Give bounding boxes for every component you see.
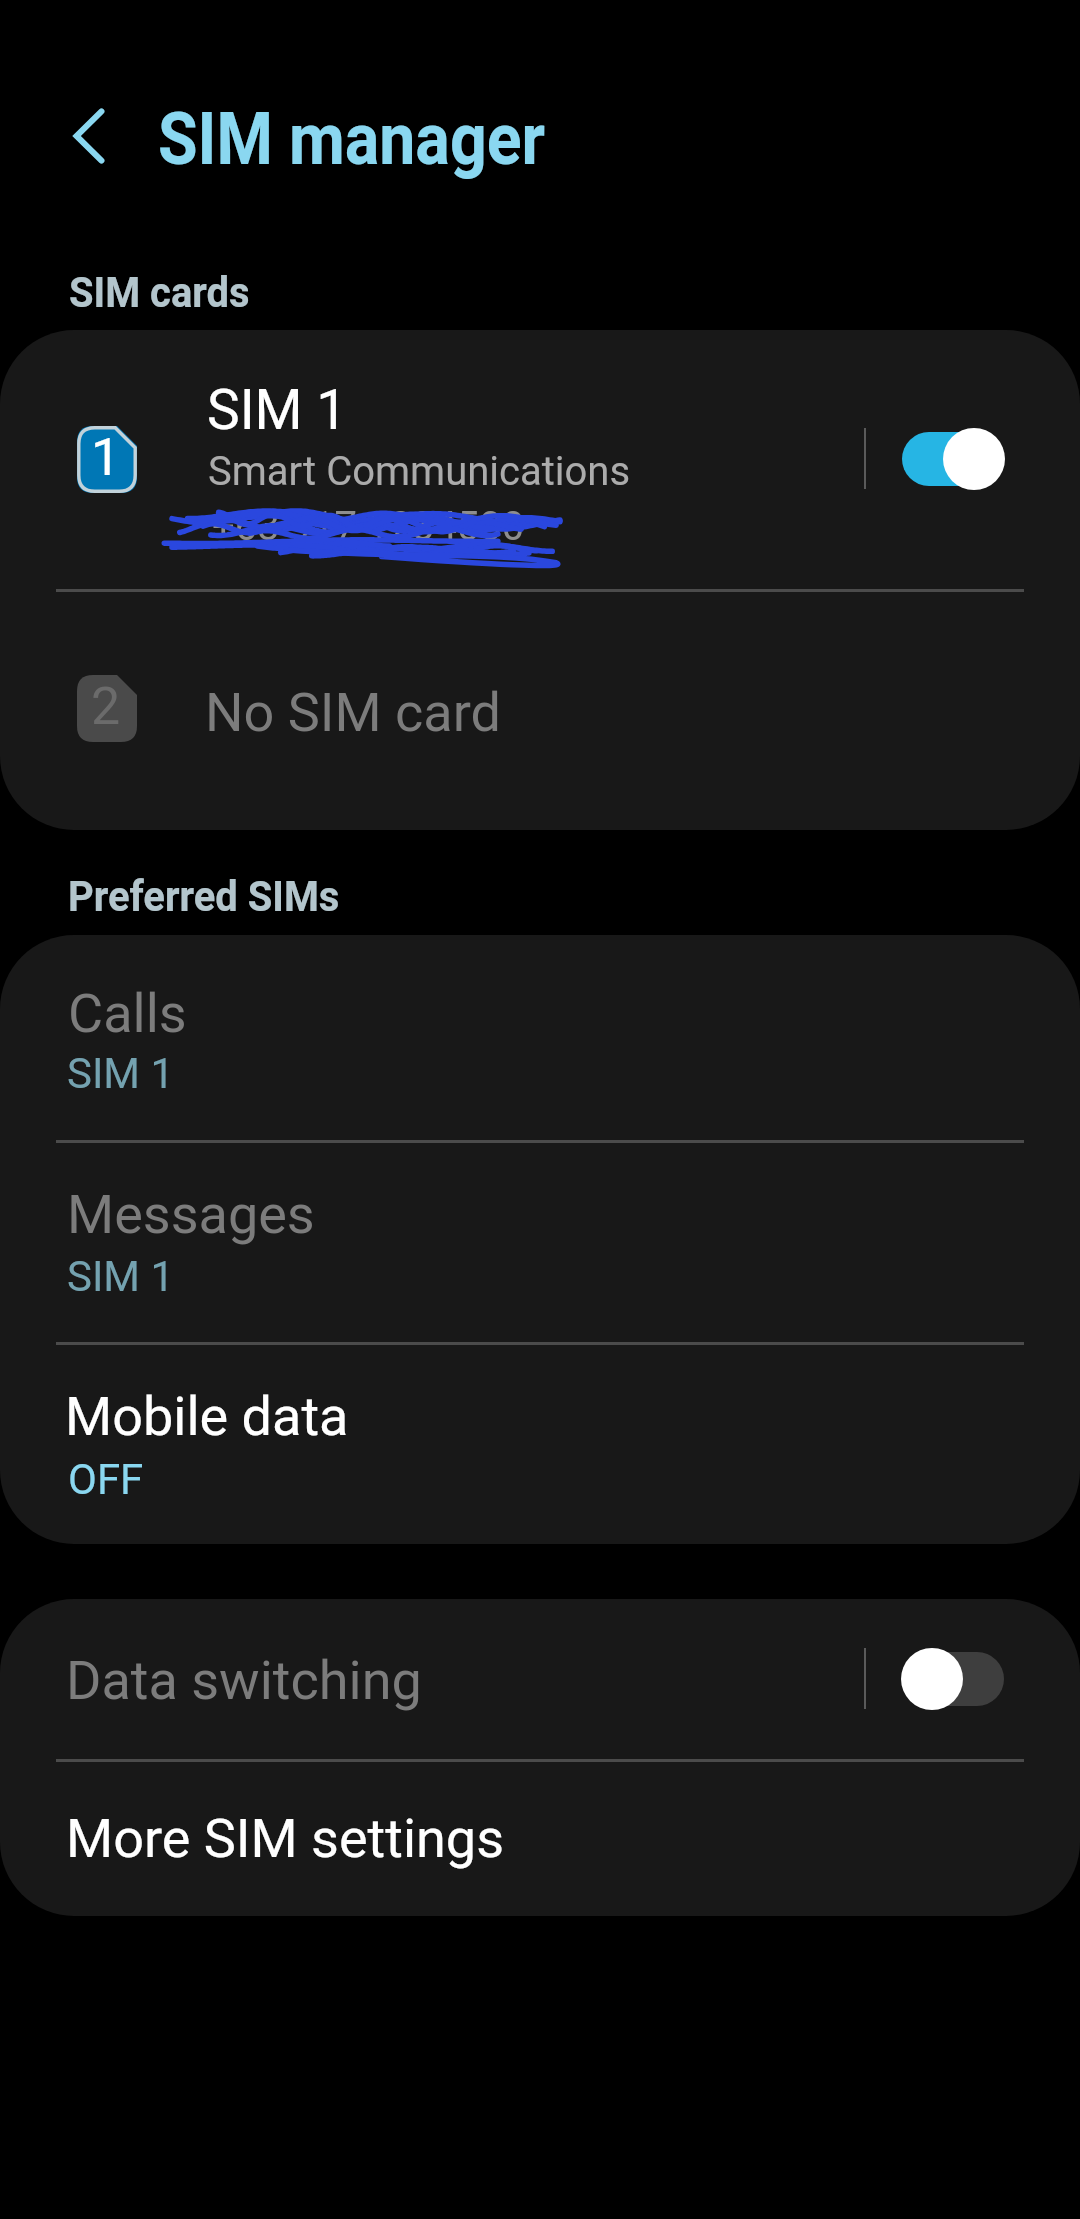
staticText: SIM cards (69, 268, 250, 317)
button[interactable]: Turn off (890, 418, 1016, 500)
button[interactable]: Data switching (0, 1599, 1080, 1759)
staticText: +63 917 1234500 (212, 503, 525, 550)
staticText: SIM manager (158, 97, 545, 181)
button[interactable]: Messages (0, 1143, 1080, 1342)
button[interactable]: More SIM settings (0, 1762, 1080, 1916)
staticText: No SIM card (205, 681, 501, 744)
staticText: Smart Communications (208, 448, 631, 495)
staticText: 1 (91, 427, 121, 488)
button[interactable]: 2 (0, 592, 1080, 830)
staticText: Calls (68, 982, 187, 1045)
staticText: Messages (67, 1183, 315, 1246)
staticText: SIM 1 (67, 1049, 175, 1098)
staticText: SIM 1 (67, 1252, 175, 1301)
staticText: OFF (68, 1455, 144, 1504)
button[interactable]: Calls (0, 935, 1080, 1140)
button[interactable]: Mobile data (0, 1345, 1080, 1544)
staticText: Data switching (66, 1649, 422, 1712)
button[interactable]: 1 (0, 330, 1080, 589)
button[interactable]: Turn on (890, 1638, 1016, 1720)
staticText: 2 (91, 676, 121, 737)
staticText: Preferred SIMs (68, 872, 340, 921)
button[interactable]: Navigate up (39, 86, 139, 186)
staticText: SIM 1 (207, 378, 348, 442)
staticText: Mobile data (65, 1385, 349, 1448)
staticText: More SIM settings (66, 1807, 505, 1870)
